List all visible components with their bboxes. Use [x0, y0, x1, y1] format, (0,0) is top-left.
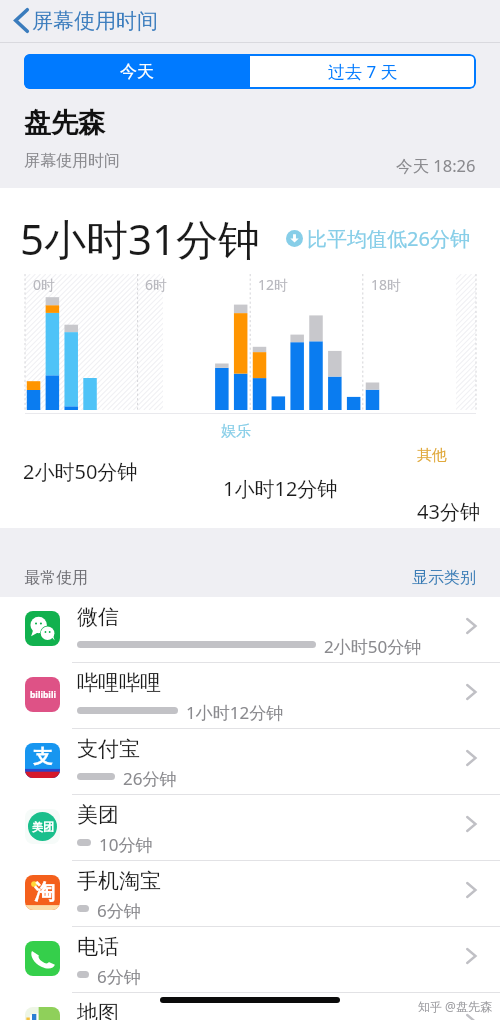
staticText: 支 [33, 745, 52, 769]
staticText: 微信 [77, 604, 119, 630]
staticText: 知乎 @盘先森 [418, 998, 492, 1014]
staticText: 娱乐 [221, 422, 251, 441]
button[interactable]: 支 [0, 729, 500, 795]
staticText: 最常使用 [24, 568, 88, 588]
button[interactable]: 电话 [0, 927, 500, 993]
staticText: 今天 18:26 [396, 154, 476, 177]
staticText: 26分钟 [123, 767, 177, 790]
button[interactable]: 微信 [0, 597, 500, 663]
staticText: 5小时31分钟 [20, 210, 261, 267]
staticText: 其他 [417, 446, 447, 465]
staticText: 0时 [33, 275, 56, 294]
staticText: 淘 [34, 879, 55, 905]
button[interactable]: 显示类别 [408, 564, 480, 592]
staticText: 美团 [32, 820, 54, 834]
button[interactable]: 美团 [0, 795, 500, 861]
staticText: 12时 [258, 275, 289, 294]
staticText: 哔哩哔哩 [77, 670, 161, 696]
staticText: 2小时50分钟 [324, 635, 422, 658]
staticText: 6分钟 [97, 965, 141, 988]
staticText: 地图 [77, 1000, 119, 1020]
staticText: bilibili [30, 689, 56, 701]
button[interactable]: Back [10, 3, 161, 38]
staticText: 6时 [145, 275, 168, 294]
staticText: 2小时50分钟 [23, 458, 138, 485]
button[interactable]: 淘 [0, 861, 500, 927]
staticText: 屏幕使用时间 [24, 151, 120, 171]
staticText: 比平均值低26分钟 [307, 225, 470, 252]
staticText: 美团 [77, 802, 119, 828]
staticText: 盘先森 [24, 106, 105, 140]
button[interactable]: bilibili [0, 663, 500, 729]
staticText: 显示类别 [412, 568, 476, 588]
staticText: 6分钟 [97, 899, 141, 922]
button[interactable]: 今天 [24, 54, 250, 89]
staticText: 1小时12分钟 [223, 475, 338, 502]
button[interactable]: 过去 7 天 [250, 54, 476, 89]
staticText: 支付宝 [77, 736, 140, 762]
staticText: 电话 [77, 934, 119, 960]
staticText: 10分钟 [99, 833, 153, 856]
staticText: 1小时12分钟 [186, 701, 284, 724]
staticText: 屏幕使用时间 [32, 8, 158, 34]
staticText: 今天 [120, 61, 154, 82]
button[interactable]: 地图 [0, 993, 500, 1020]
staticText: 手机淘宝 [77, 868, 161, 894]
staticText: 过去 7 天 [328, 60, 398, 83]
staticText: 18时 [371, 275, 402, 294]
staticText: 43分钟 [417, 498, 480, 525]
